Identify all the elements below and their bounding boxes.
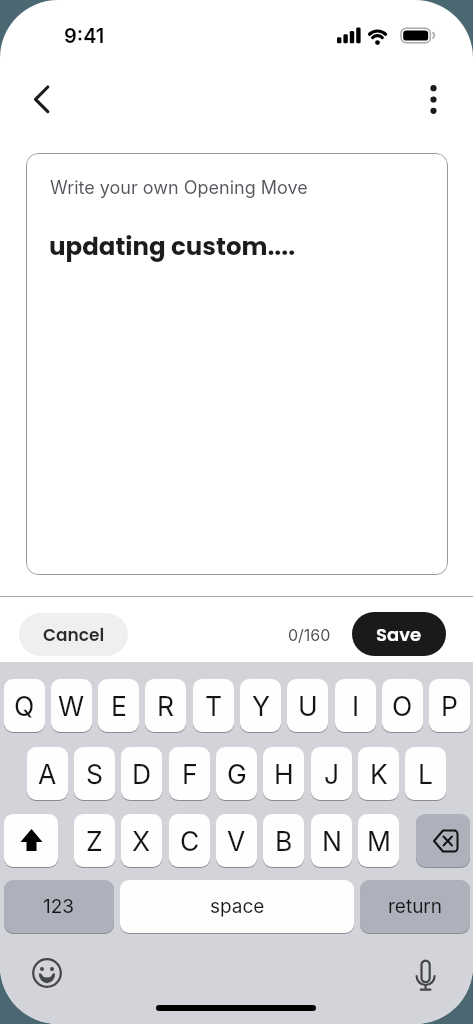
staticText: L [418, 758, 433, 790]
button[interactable]: C [169, 814, 210, 867]
staticText: I [352, 690, 360, 722]
staticText: K [370, 758, 388, 790]
button[interactable]: return [360, 880, 470, 933]
button[interactable]: E [98, 679, 139, 732]
staticText: J [324, 758, 340, 790]
button[interactable]: G [216, 747, 257, 800]
staticText: H [274, 758, 294, 790]
staticText: P [441, 690, 458, 722]
button[interactable]: B [263, 814, 304, 867]
button[interactable]: K [358, 747, 399, 800]
button[interactable]: W [51, 679, 92, 732]
staticText: S [86, 758, 104, 790]
staticText: Z [86, 825, 103, 857]
staticText: 9:41 [64, 24, 105, 48]
staticText: D [132, 758, 152, 790]
staticText: M [367, 825, 391, 857]
staticText: Q [14, 690, 35, 722]
button[interactable]: H [263, 747, 304, 800]
button[interactable]: space [120, 880, 354, 933]
staticText: A [38, 758, 57, 790]
button[interactable]: V [216, 814, 257, 867]
staticText: T [205, 690, 223, 722]
staticText: Y [252, 690, 270, 722]
staticText: 123 [43, 895, 75, 918]
staticText: O [392, 690, 413, 722]
button[interactable] [18, 76, 64, 122]
staticText: N [322, 825, 342, 857]
button[interactable] [416, 814, 470, 867]
button[interactable]: J [311, 747, 352, 800]
button[interactable]: M [358, 814, 399, 867]
staticText: Save [376, 622, 422, 647]
staticText: V [227, 825, 246, 857]
button[interactable]: I [335, 679, 376, 732]
button[interactable]: U [287, 679, 328, 732]
button[interactable]: A [27, 747, 68, 800]
button[interactable]: D [121, 747, 162, 800]
staticText: X [132, 825, 151, 857]
button[interactable]: Y [240, 679, 281, 732]
staticText: Write your own Opening Move [50, 177, 308, 199]
button[interactable]: R [145, 679, 186, 732]
button[interactable]: Save [352, 612, 446, 656]
staticText: U [298, 690, 318, 722]
staticText: R [157, 690, 175, 722]
button[interactable]: Q [4, 679, 45, 732]
button[interactable] [4, 814, 58, 867]
button[interactable] [411, 76, 457, 122]
button[interactable]: T [193, 679, 234, 732]
button[interactable]: L [405, 747, 446, 800]
staticText: updating custom.... [49, 229, 296, 263]
button[interactable]: O [382, 679, 423, 732]
button[interactable]: 123 [4, 880, 114, 933]
button[interactable]: Z [74, 814, 115, 867]
staticText: F [182, 758, 198, 790]
button[interactable]: S [74, 747, 115, 800]
button[interactable]: P [429, 679, 470, 732]
button[interactable]: Cancel [19, 613, 128, 656]
staticText: 0/160 [288, 625, 331, 644]
button[interactable]: N [311, 814, 352, 867]
staticText: W [58, 690, 85, 722]
staticText: return [388, 895, 443, 918]
button[interactable]: X [121, 814, 162, 867]
staticText: G [227, 758, 247, 790]
button[interactable]: Write your own Opening Move [26, 153, 448, 575]
staticText: Cancel [43, 623, 105, 647]
staticText: E [111, 690, 127, 722]
staticText: C [180, 825, 200, 857]
staticText: space [210, 895, 265, 918]
staticText: B [275, 825, 293, 857]
button[interactable]: F [169, 747, 210, 800]
